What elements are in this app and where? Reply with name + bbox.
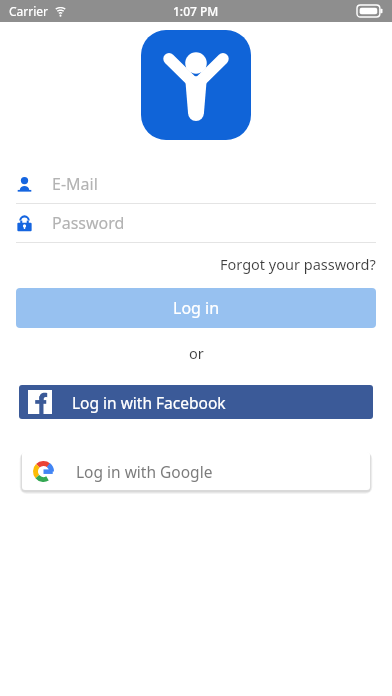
other: Password [16, 215, 33, 232]
staticText: E-Mail [52, 173, 98, 195]
staticText: Password [52, 212, 125, 234]
other: Email [16, 176, 33, 193]
staticText: Log in with Facebook [72, 392, 226, 413]
button[interactable]: Log in [16, 288, 376, 328]
button[interactable]: Forgot your password? [0, 254, 392, 274]
button[interactable]: Password [0, 204, 392, 242]
button[interactable]: Log in with Facebook [19, 385, 373, 419]
staticText: Carrier [9, 3, 49, 19]
staticText: or [189, 343, 204, 363]
staticText: Log in [173, 297, 220, 319]
staticText: Forgot your password? [220, 254, 376, 274]
staticText: Log in with Google [76, 461, 213, 482]
button[interactable]: Log in with Google [22, 452, 370, 490]
button[interactable]: Email [0, 165, 392, 203]
staticText: 1:07 PM [173, 3, 219, 19]
